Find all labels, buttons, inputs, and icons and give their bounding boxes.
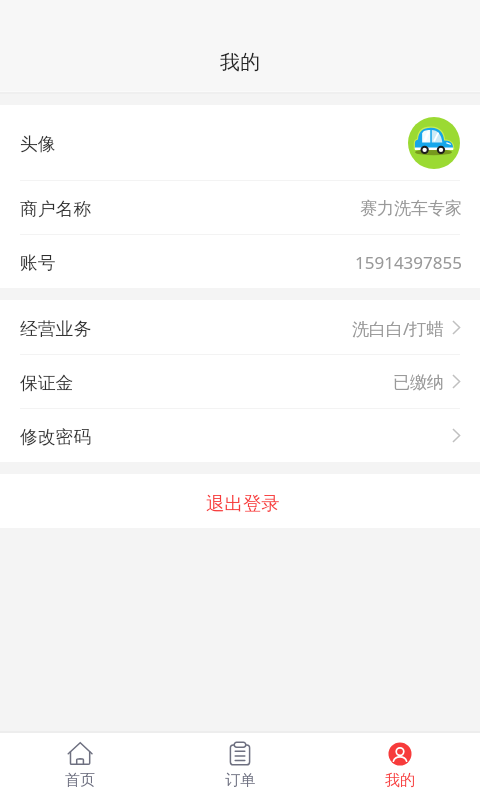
staticText: 首页 [65, 771, 95, 790]
button[interactable]: Avatar [408, 117, 460, 169]
button[interactable]: 经营业务 [0, 300, 480, 354]
staticText: 修改密码 [20, 426, 92, 448]
staticText: 商户名称 [20, 198, 92, 220]
button[interactable]: 首页 [0, 733, 160, 800]
staticText: 订单 [225, 771, 255, 790]
button[interactable]: 我的 [320, 733, 480, 800]
staticText: 我的 [385, 771, 415, 790]
staticText: 洗白白/打蜡 [352, 317, 444, 340]
staticText: 我的 [220, 50, 260, 75]
staticText: 经营业务 [20, 318, 92, 340]
button[interactable]: 修改密码 [0, 408, 480, 462]
staticText: 头像 [20, 133, 56, 155]
staticText: 保证金 [20, 372, 74, 394]
button[interactable]: 账号 [0, 234, 480, 288]
staticText: 退出登录 [206, 492, 280, 515]
button[interactable]: 退出登录 [0, 474, 480, 528]
staticText: 15914397855 [355, 251, 462, 274]
button[interactable]: 头像 [0, 105, 480, 180]
staticText: 账号 [20, 252, 56, 274]
button[interactable]: 商户名称 [0, 180, 480, 234]
staticText: 赛力洗车专家 [360, 198, 462, 219]
button[interactable]: 保证金 [0, 354, 480, 408]
button[interactable]: 订单 [160, 733, 320, 800]
staticText: 已缴纳 [393, 372, 444, 393]
